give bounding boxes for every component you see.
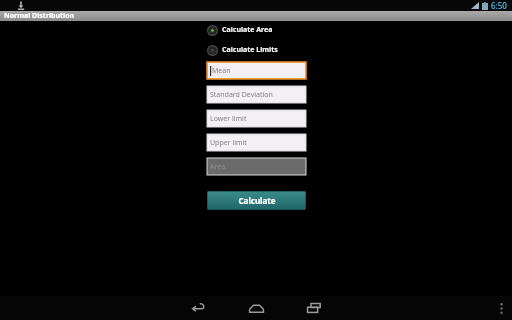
button[interactable]: Upper limit bbox=[207, 134, 306, 151]
button[interactable]: Lower limit bbox=[207, 110, 306, 127]
staticText: Mean bbox=[212, 66, 231, 76]
button[interactable]: Area bbox=[207, 158, 306, 175]
staticText: Calculate bbox=[238, 195, 276, 206]
button[interactable]: Standard Deviation bbox=[207, 86, 306, 103]
button[interactable]: Mean bbox=[207, 62, 306, 79]
button[interactable]: Recent apps bbox=[295, 297, 333, 319]
button[interactable]: Calculate Area bbox=[207, 23, 273, 37]
button[interactable]: Back bbox=[179, 297, 217, 319]
staticText: Standard Deviation bbox=[210, 90, 273, 100]
staticText: Area bbox=[210, 162, 226, 172]
staticText: Calculate Area bbox=[222, 25, 273, 35]
staticText: Upper limit bbox=[210, 138, 247, 148]
staticText: Normal Distribution bbox=[4, 11, 75, 21]
button[interactable]: More options bbox=[490, 297, 512, 319]
button[interactable]: Home bbox=[237, 297, 275, 319]
button[interactable]: Calculate Limits bbox=[207, 43, 278, 57]
staticText: Lower limit bbox=[210, 114, 247, 124]
button[interactable]: Calculate bbox=[207, 191, 306, 210]
staticText: Calculate Limits bbox=[222, 45, 278, 55]
staticText: 6:50 bbox=[491, 0, 507, 11]
